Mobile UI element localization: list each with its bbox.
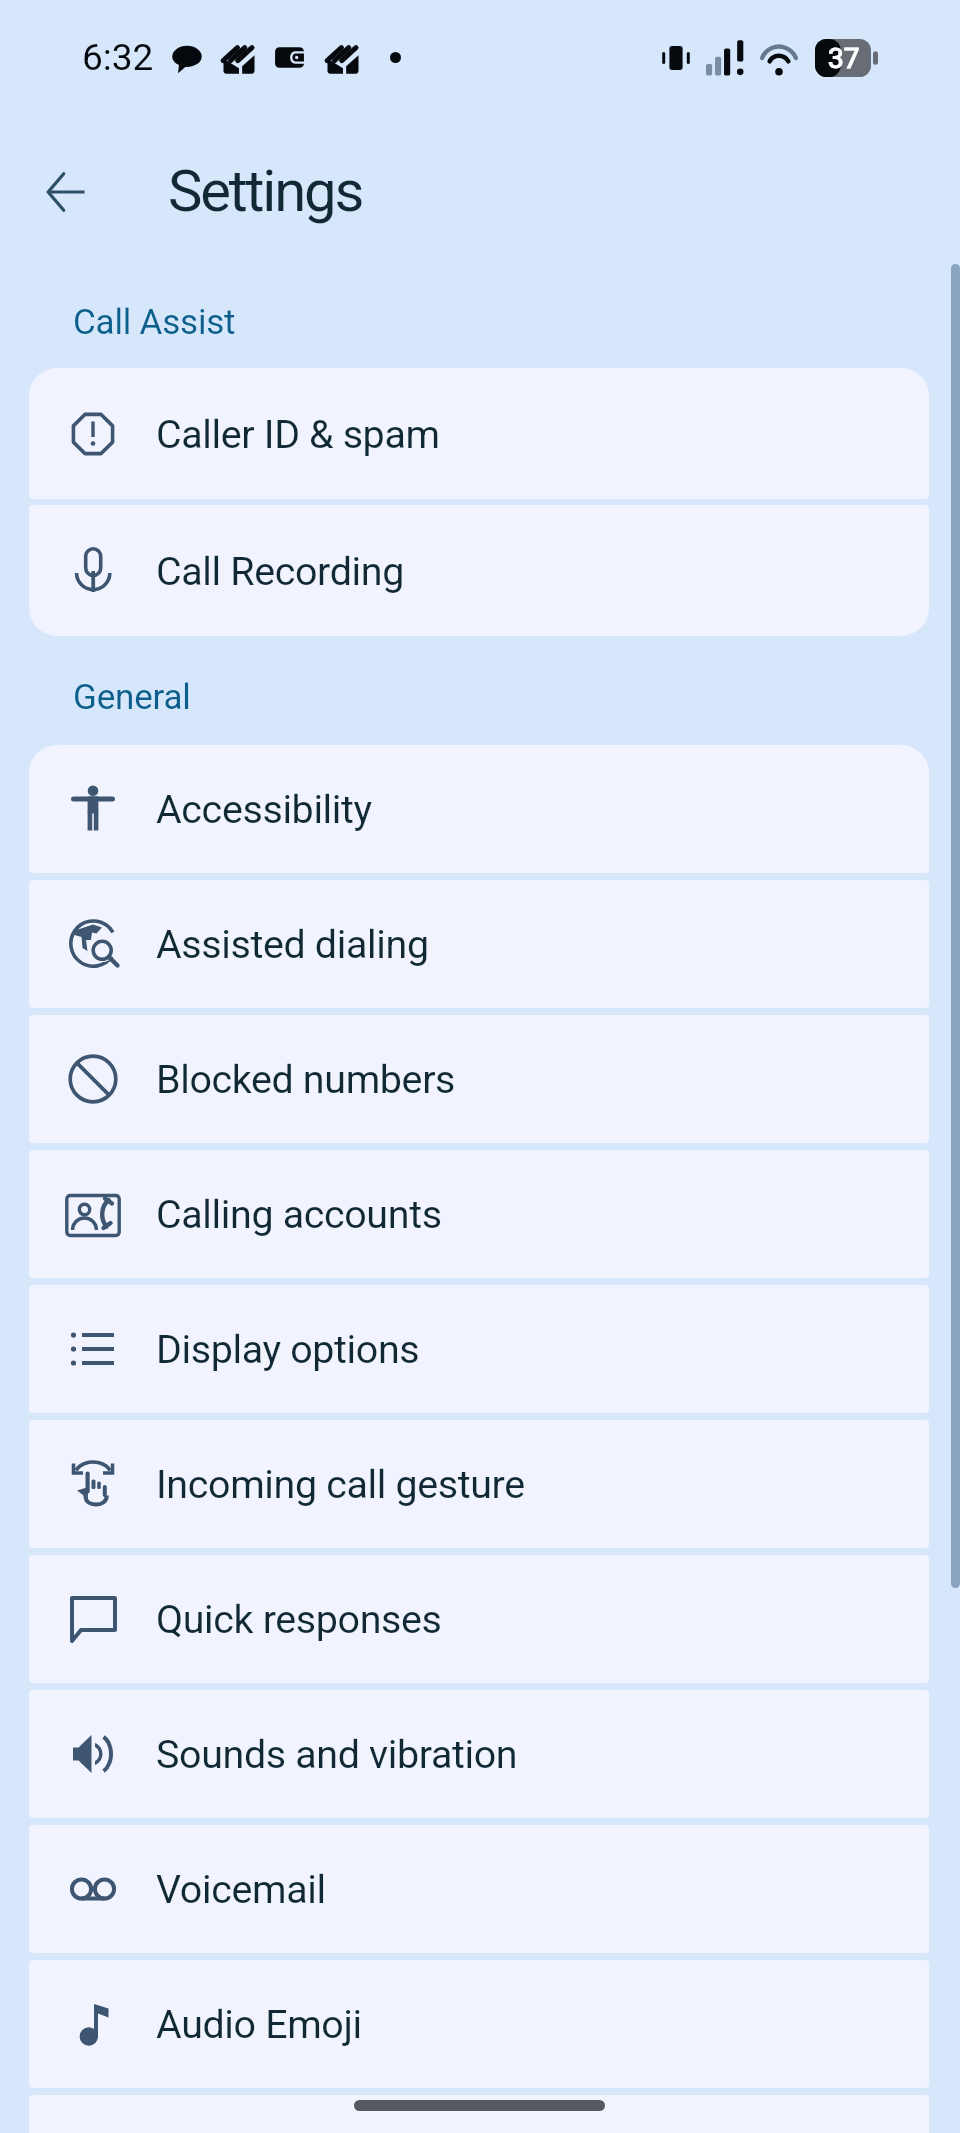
button[interactable]: Assisted dialing: [29, 880, 929, 1008]
staticText: Call Assist: [73, 302, 236, 343]
button[interactable]: Calling accounts: [29, 1150, 929, 1278]
button[interactable]: Caller ID & spam: [29, 368, 929, 499]
staticText: Settings: [168, 157, 363, 225]
staticText: Voicemail: [156, 1866, 326, 1912]
button[interactable]: Call Recording: [29, 505, 929, 636]
staticText: Quick responses: [156, 1596, 442, 1642]
staticText: Display options: [156, 1326, 420, 1372]
staticText: General: [73, 677, 191, 718]
staticText: Blocked numbers: [156, 1056, 456, 1102]
button[interactable]: Quick responses: [29, 1555, 929, 1683]
button[interactable]: Display options: [29, 1285, 929, 1413]
staticText: Audio Emoji: [156, 2001, 362, 2047]
button[interactable]: Voicemail: [29, 1825, 929, 1953]
staticText: Call Recording: [156, 548, 404, 594]
button[interactable]: Back: [30, 156, 102, 228]
staticText: Incoming call gesture: [156, 1461, 525, 1507]
staticText: Caller ID & spam: [156, 411, 440, 457]
button[interactable]: Incoming call gesture: [29, 1420, 929, 1548]
button[interactable]: Audio Emoji: [29, 1960, 929, 2088]
button[interactable]: Sounds and vibration: [29, 1690, 929, 1818]
staticText: Sounds and vibration: [156, 1731, 518, 1777]
button[interactable]: Accessibility: [29, 745, 929, 873]
staticText: 6:32: [82, 36, 154, 79]
staticText: 37: [828, 42, 860, 75]
button[interactable]: Nearby places: [29, 2095, 929, 2133]
staticText: Assisted dialing: [156, 921, 429, 967]
staticText: Accessibility: [156, 786, 372, 832]
staticText: Calling accounts: [156, 1191, 442, 1237]
button[interactable]: Blocked numbers: [29, 1015, 929, 1143]
